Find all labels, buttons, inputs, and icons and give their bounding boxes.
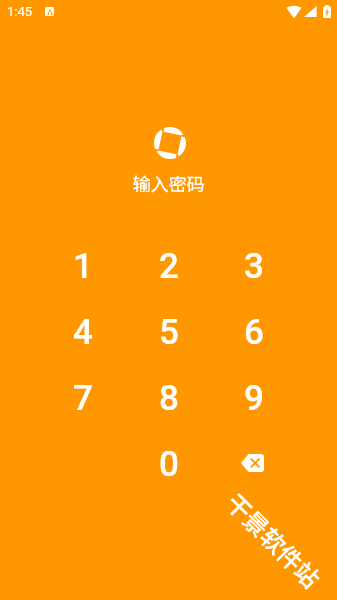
staticText: 2: [159, 246, 179, 287]
staticText: 7: [73, 378, 93, 419]
staticText: 4: [73, 312, 93, 353]
button[interactable]: 8: [126, 365, 211, 431]
staticText: 1: [73, 246, 93, 287]
staticText: 0: [159, 444, 179, 485]
staticText: 5: [159, 312, 179, 353]
staticText: 8: [159, 378, 179, 419]
button[interactable]: 2: [126, 233, 211, 299]
other: Wi-Fi: [286, 5, 302, 18]
button[interactable]: Delete: [211, 431, 296, 497]
button[interactable]: 4: [40, 299, 126, 365]
button[interactable]: 3: [211, 233, 296, 299]
button[interactable]: 6: [211, 299, 296, 365]
button[interactable]: 5: [126, 299, 211, 365]
other: Battery charging: [323, 5, 331, 18]
other: Delete: [232, 442, 276, 486]
button[interactable]: 9: [211, 365, 296, 431]
button[interactable]: 0: [126, 431, 211, 497]
staticText: 1:45: [7, 4, 33, 19]
staticText: 干景软件站: [219, 485, 329, 595]
staticText: 9: [244, 378, 264, 419]
staticText: 输入密码: [0, 170, 337, 196]
other: Mobile signal: [304, 6, 317, 17]
staticText: 3: [244, 246, 264, 287]
button[interactable]: 1: [40, 233, 126, 299]
staticText: 6: [244, 312, 264, 353]
button[interactable]: 7: [40, 365, 126, 431]
